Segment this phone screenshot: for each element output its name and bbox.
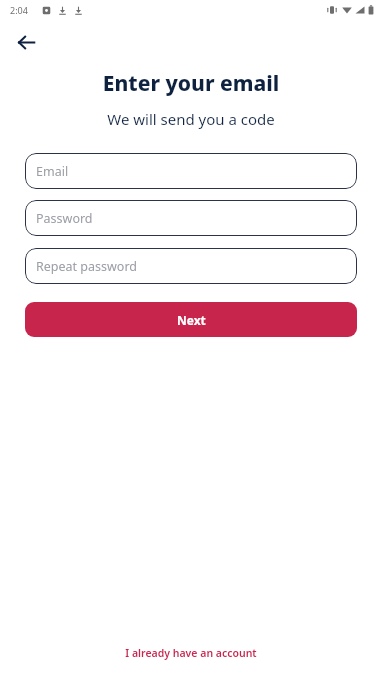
button[interactable]: I already have an account [117, 642, 265, 664]
staticText: We will send you a code [0, 109, 382, 129]
staticText: Enter your email [0, 69, 382, 98]
staticText: I already have an account [125, 646, 257, 660]
button[interactable]: Password [25, 200, 357, 236]
button[interactable]: Email [25, 153, 357, 189]
staticText: Repeat password [36, 258, 138, 275]
staticText: 2:04 [10, 4, 28, 16]
button[interactable]: Next [25, 302, 357, 337]
staticText: Password [36, 210, 93, 227]
staticText: Next [177, 312, 206, 328]
button[interactable]: Repeat password [25, 248, 357, 284]
button[interactable]: Back [8, 24, 44, 60]
staticText: Email [36, 163, 69, 180]
